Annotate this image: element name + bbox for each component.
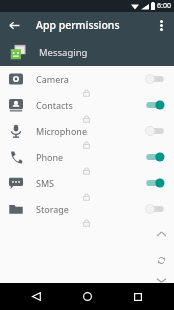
staticText: Camera: [36, 73, 145, 85]
button[interactable]: Back: [21, 283, 51, 310]
button[interactable]: Camera: [0, 66, 174, 92]
staticText: Messaging: [39, 46, 88, 59]
staticText: Phone: [36, 151, 145, 163]
staticText: Microphone: [36, 125, 145, 137]
button[interactable]: More options: [152, 16, 170, 34]
button[interactable]: Home: [72, 283, 102, 310]
button[interactable]: Messaging: [0, 38, 174, 66]
button[interactable]: Phone: [0, 144, 174, 170]
button[interactable]: Storage: [0, 196, 174, 222]
button[interactable]: Contacts: [0, 92, 174, 118]
button[interactable]: Recent apps: [123, 283, 153, 310]
button[interactable]: Microphone: [0, 118, 174, 144]
button[interactable]: Back: [5, 16, 23, 34]
staticText: SMS: [36, 177, 145, 189]
staticText: Storage: [36, 203, 145, 215]
button[interactable]: Scroll up: [153, 226, 169, 242]
staticText: Contacts: [36, 99, 145, 111]
button[interactable]: Scroll down: [153, 278, 169, 283]
staticText: App permissions: [36, 18, 120, 32]
button[interactable]: SMS: [0, 170, 174, 196]
button[interactable]: Refresh: [153, 252, 169, 268]
staticText: 6:00: [157, 1, 171, 11]
